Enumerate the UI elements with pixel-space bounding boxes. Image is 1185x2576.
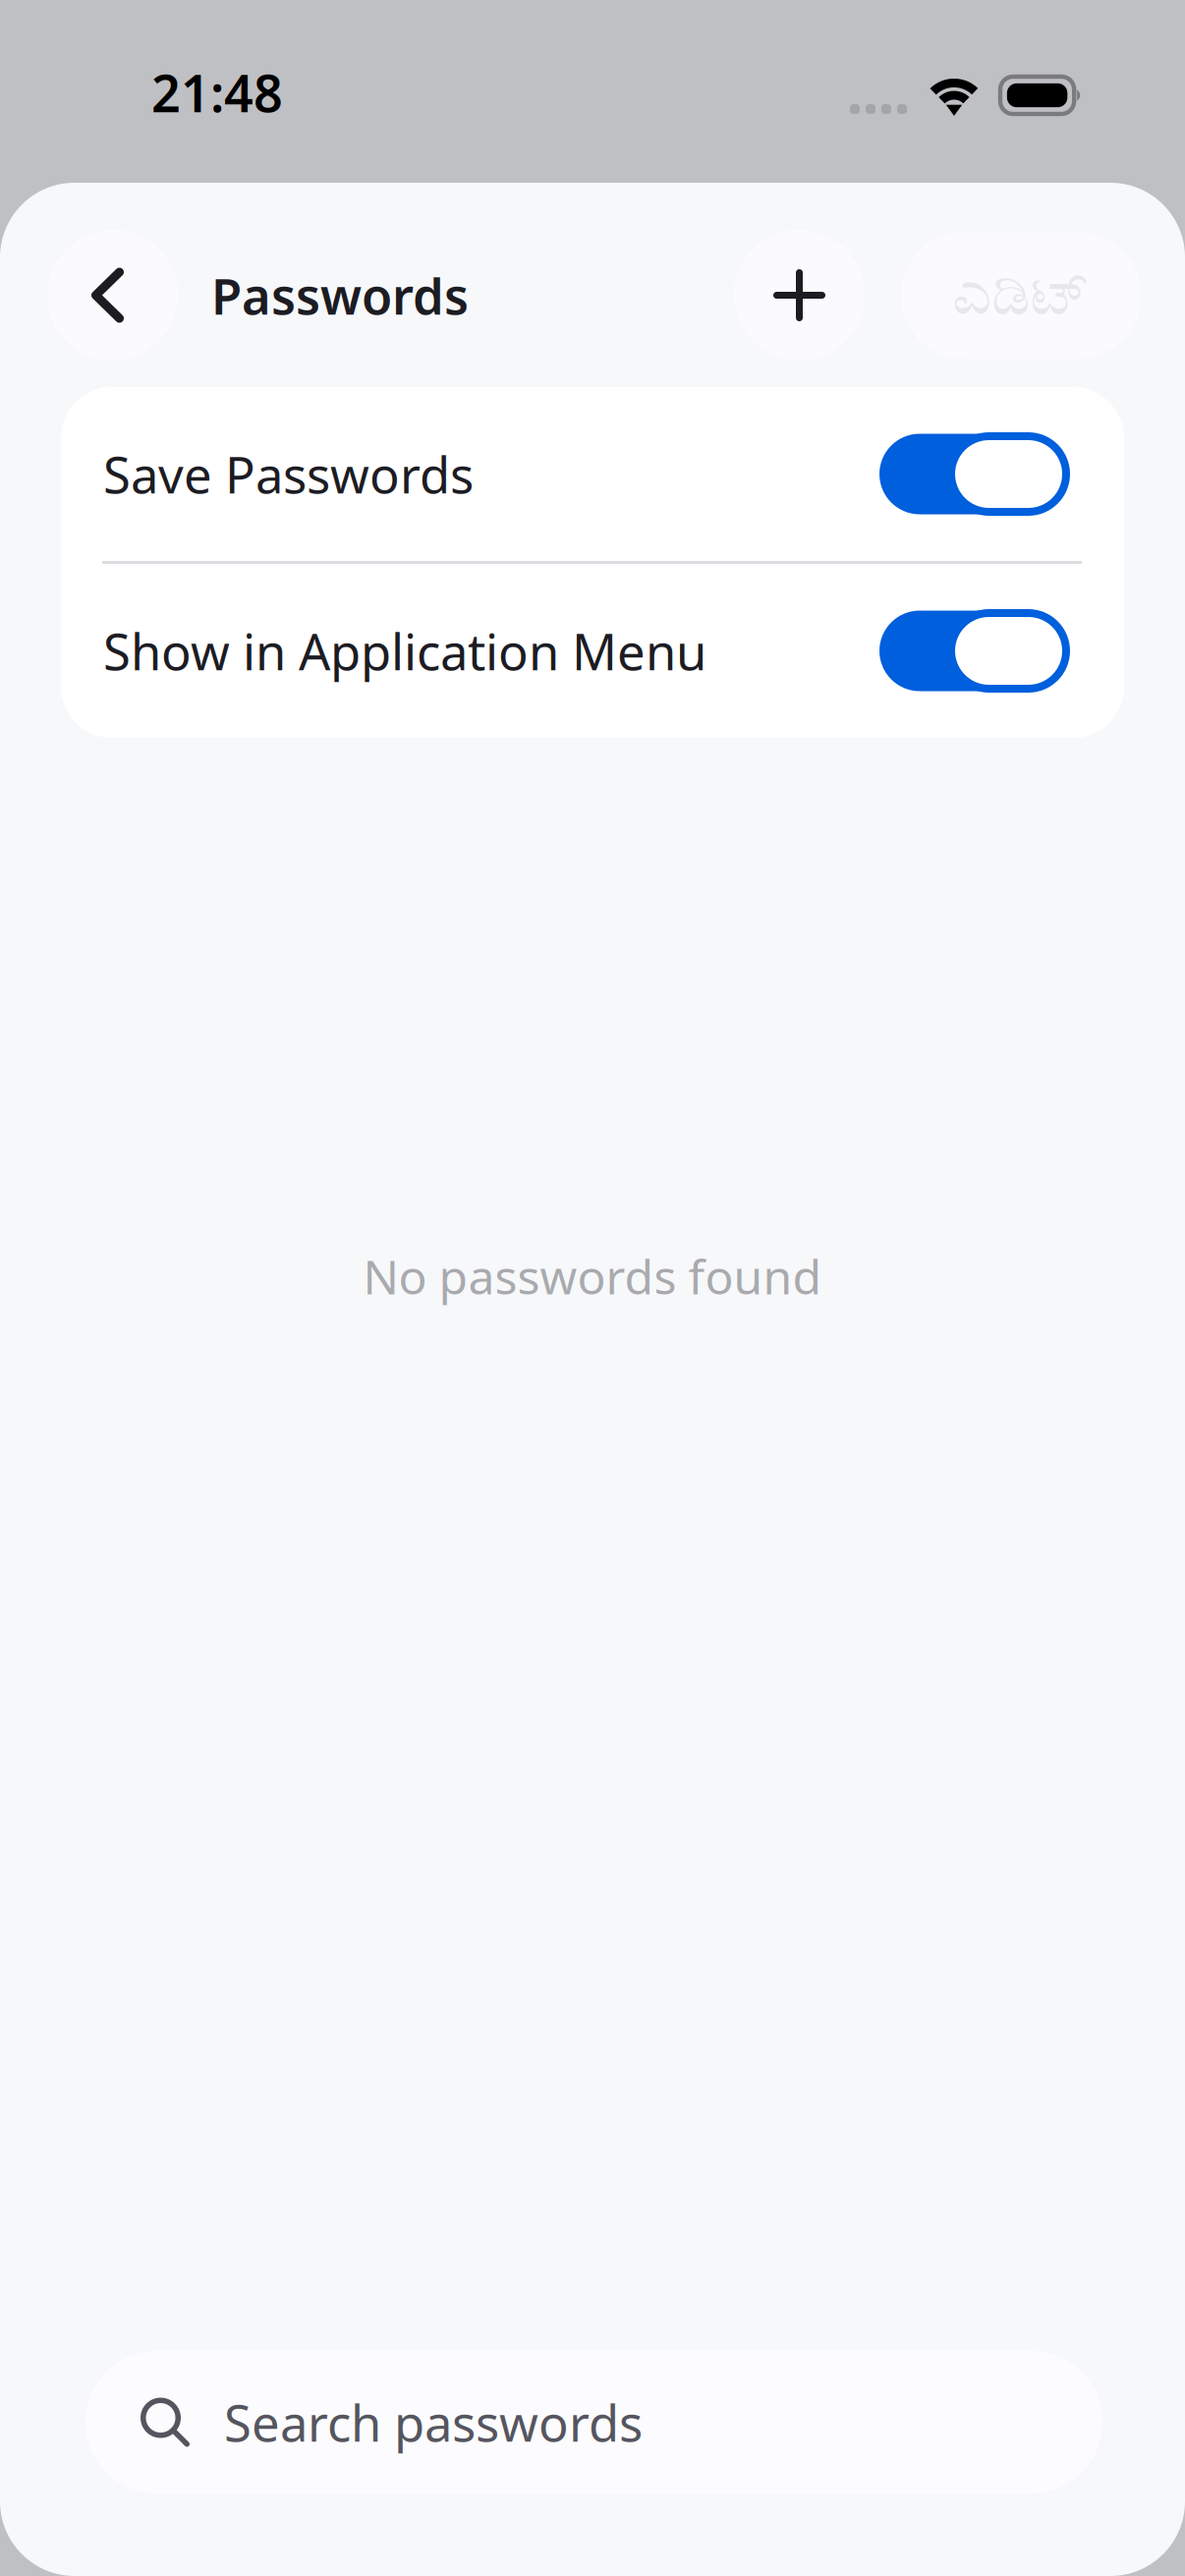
- button[interactable]: Show in Application Menu: [61, 564, 1124, 738]
- button[interactable]: Save Passwords: [61, 387, 1124, 561]
- button[interactable]: Back: [47, 230, 178, 361]
- staticText: Passwords: [211, 262, 469, 328]
- button[interactable]: Search passwords: [85, 2351, 1102, 2493]
- staticText: Save Passwords: [103, 441, 474, 507]
- staticText: ಎಡಿಟ್: [952, 265, 1090, 325]
- staticText: Show in Application Menu: [103, 618, 706, 684]
- staticText: 21:48: [151, 58, 283, 126]
- button[interactable]: Add password: [734, 230, 865, 361]
- staticText: No passwords found: [363, 1245, 822, 1307]
- staticText: Search passwords: [224, 2389, 643, 2455]
- button[interactable]: ಎಡಿಟ್: [901, 231, 1141, 359]
